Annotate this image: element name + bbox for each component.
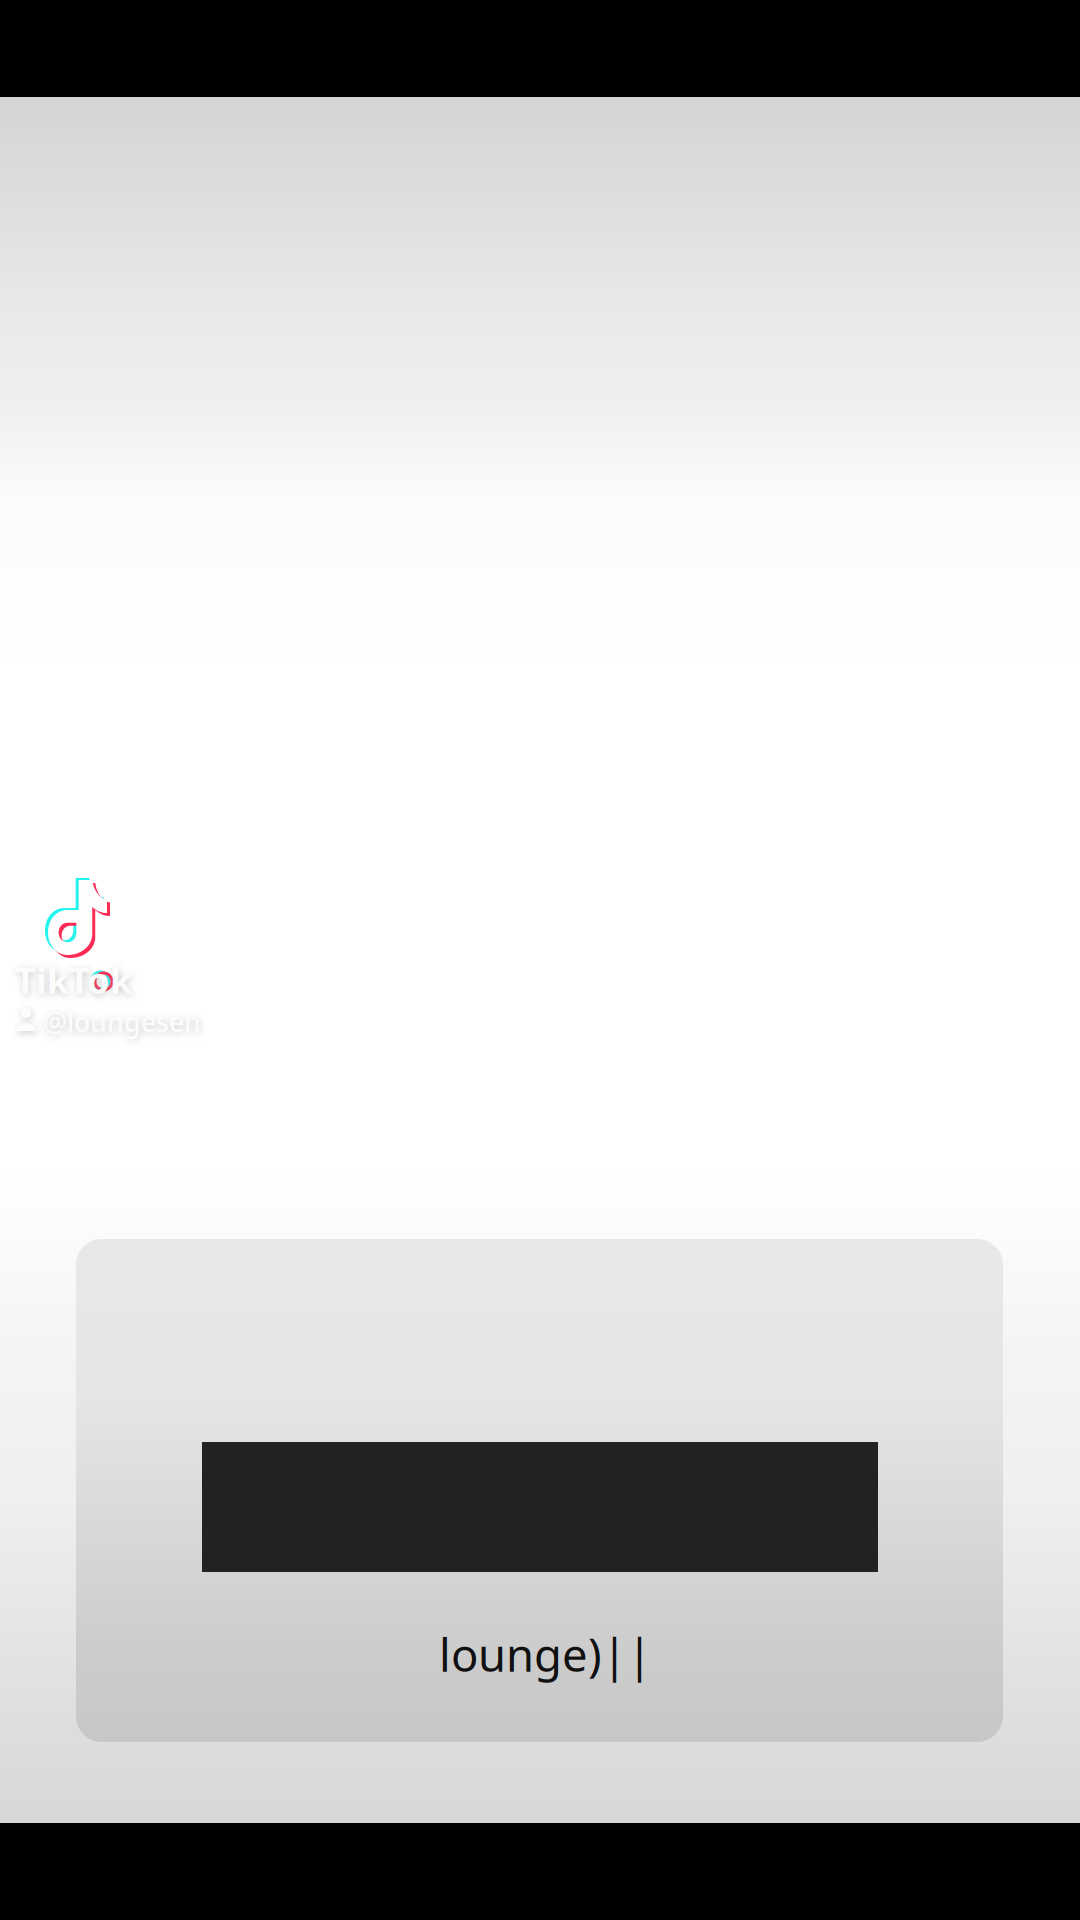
staticText: lounge)|| <box>439 1624 652 1684</box>
button[interactable]: lounge)|| <box>76 1239 1003 1742</box>
staticText: @loungesen <box>43 1004 201 1039</box>
staticText: TikTok <box>15 956 132 1004</box>
button[interactable]: TikTok @loungesen <box>3 878 263 1058</box>
